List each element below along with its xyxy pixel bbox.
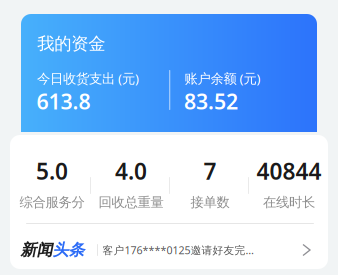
staticText: 新闻	[20, 240, 52, 260]
staticText: 今日收货支出 (元)	[37, 69, 139, 87]
staticText: 5.0	[36, 156, 68, 186]
button[interactable]: 新闻	[10, 228, 328, 272]
staticText: 接单数	[190, 194, 229, 210]
staticText: 客户176****0125邀请好友完…	[102, 243, 253, 257]
staticText: 我的资金	[37, 33, 105, 54]
staticText: 头条	[52, 240, 84, 260]
staticText: 账户余额 (元)	[185, 69, 261, 87]
staticText: 40844	[256, 156, 321, 186]
staticText: 4.0	[115, 156, 147, 186]
staticText: 回收总重量	[98, 194, 163, 210]
staticText: 在线时长	[263, 194, 315, 210]
staticText: 613.8	[36, 87, 90, 115]
staticText: 综合服务分	[19, 194, 84, 210]
staticText: 83.52	[184, 87, 238, 115]
staticText: 7	[203, 156, 216, 186]
